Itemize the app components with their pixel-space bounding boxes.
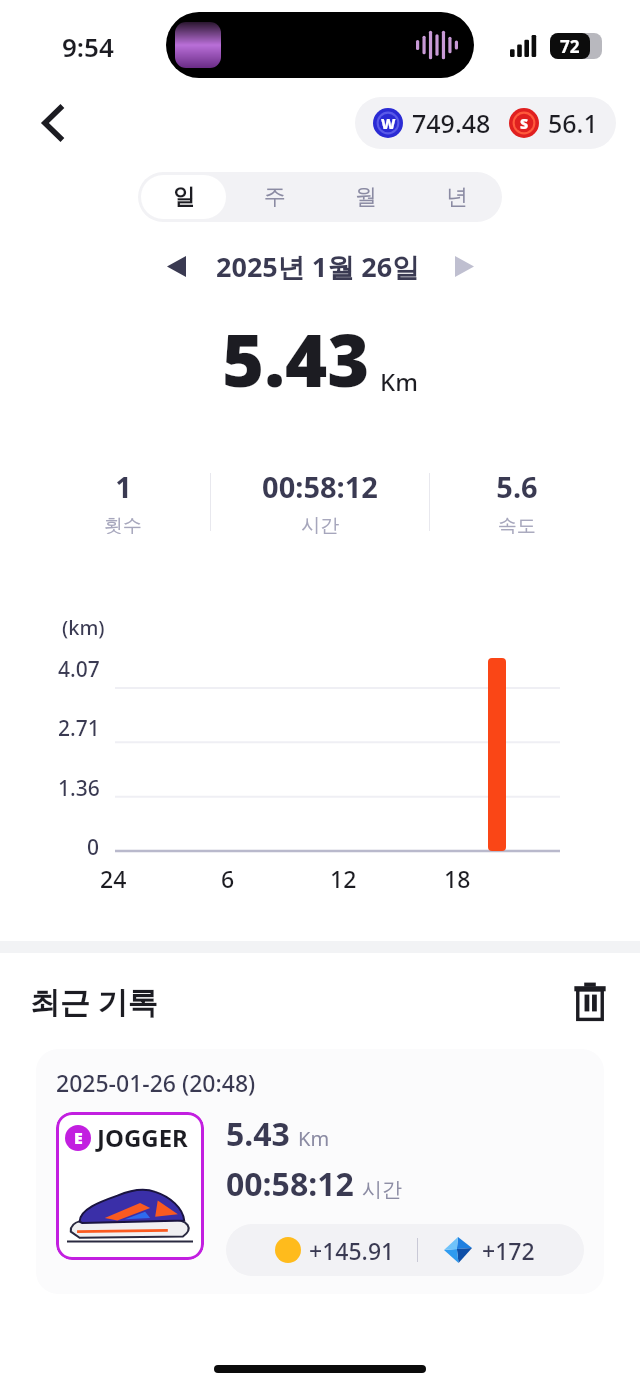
staticText: JOGGER	[97, 1121, 188, 1154]
staticText: 1	[115, 467, 132, 506]
staticText: 횟수	[104, 514, 142, 538]
staticText: (km)	[62, 614, 105, 641]
button[interactable]: 2025-01-26 (20:48)	[36, 1049, 604, 1294]
staticText: Km	[298, 1125, 330, 1152]
staticText: 9:54	[62, 29, 114, 64]
staticText: 1.36	[58, 774, 100, 796]
staticText: 5.43	[226, 1112, 290, 1156]
staticText: 2025년 1월 26일	[216, 248, 420, 285]
staticText: 일	[173, 183, 195, 211]
staticText: 주	[264, 183, 286, 211]
staticText: W	[381, 114, 396, 133]
button[interactable]: W	[355, 97, 616, 149]
staticText: 24	[100, 863, 127, 894]
staticText: 72	[560, 35, 580, 58]
staticText: 속도	[498, 514, 536, 538]
staticText: 년	[446, 183, 468, 211]
staticText: S	[520, 114, 529, 133]
staticText: +172	[482, 1235, 535, 1266]
staticText: 6	[221, 863, 235, 894]
button[interactable]: Previous day	[154, 244, 198, 288]
staticText: 0	[87, 833, 100, 855]
staticText: 749.48	[412, 106, 491, 140]
staticText: 00:58:12	[262, 467, 378, 506]
staticText: Km	[380, 365, 418, 398]
staticText: +145.91	[309, 1235, 395, 1266]
staticText: E	[74, 1127, 83, 1149]
button[interactable]: 년	[414, 175, 499, 219]
staticText: 시간	[301, 514, 339, 538]
button[interactable]: Delete records	[562, 973, 618, 1029]
button[interactable]: 일	[141, 175, 226, 219]
staticText: 00:58:12	[226, 1162, 354, 1206]
staticText: 12	[330, 863, 357, 894]
staticText: 최근 기록	[30, 981, 158, 1022]
staticText: 월	[355, 183, 377, 211]
button[interactable]: 월	[323, 175, 408, 219]
button[interactable]: 주	[232, 175, 317, 219]
staticText: 4.07	[58, 655, 100, 677]
staticText: 18	[444, 863, 471, 894]
staticText: 56.1	[548, 106, 598, 140]
staticText: 2.71	[58, 714, 100, 736]
staticText: 5.43	[222, 310, 370, 408]
button[interactable]: 1	[36, 446, 604, 558]
staticText: 시간	[362, 1177, 402, 1202]
button[interactable]: Back	[28, 97, 80, 149]
staticText: 2025-01-26 (20:48)	[56, 1067, 256, 1098]
staticText: 5.6	[496, 467, 538, 506]
button[interactable]: Next day	[442, 244, 486, 288]
